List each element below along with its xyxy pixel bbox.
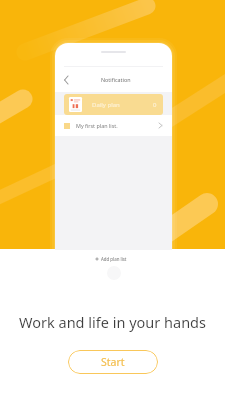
button[interactable]: My first plan list. <box>55 115 172 136</box>
staticText: Daily plan <box>92 101 120 109</box>
staticText: Notification <box>101 76 131 83</box>
button[interactable]: Start <box>68 350 158 374</box>
staticText: 0 <box>153 101 157 109</box>
staticText: Add plan list <box>101 256 127 262</box>
button[interactable]: Add plan list <box>55 250 172 267</box>
staticText: Start <box>101 355 125 369</box>
button[interactable]: Daily plan <box>64 94 163 115</box>
staticText: Work and life in your hands <box>19 312 206 332</box>
staticText: My first plan list. <box>76 122 118 129</box>
button[interactable]: Back <box>55 67 77 92</box>
